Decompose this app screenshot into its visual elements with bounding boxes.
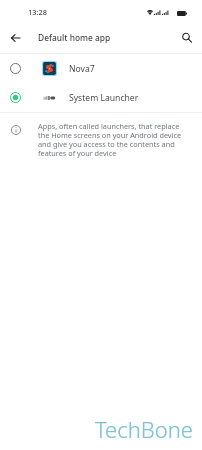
staticText: System Launcher xyxy=(69,92,139,104)
staticText: TechBone xyxy=(95,414,193,444)
staticText: Default home app xyxy=(38,32,111,43)
button[interactable]: Search xyxy=(177,28,196,47)
staticText: 13:28 xyxy=(28,7,47,17)
staticText: Nova7 xyxy=(69,63,95,75)
button[interactable]: Nova7 xyxy=(0,54,202,83)
button[interactable]: Back xyxy=(6,28,25,47)
staticText: Apps, often called launchers, that repla… xyxy=(38,121,186,159)
button[interactable]: System Launcher xyxy=(0,83,202,112)
